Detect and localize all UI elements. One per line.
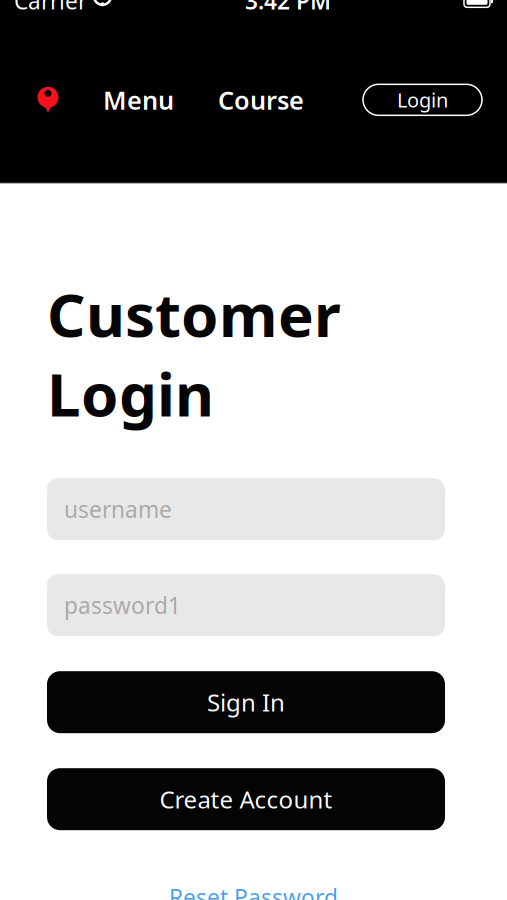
button[interactable]: Login [363,84,482,115]
staticText: Reset Password [169,882,338,900]
staticText: Sign In [207,686,285,718]
staticText: password1 [64,590,181,620]
button[interactable]: Course [208,79,314,121]
button[interactable]: username [47,478,445,540]
staticText: username [64,494,172,524]
staticText: Menu [103,83,174,117]
staticText: Course [218,83,304,117]
button[interactable]: Reset Password [47,882,460,900]
staticText: 3:42 PM [245,0,331,16]
staticText: Carrier [14,0,87,16]
button[interactable]: Sign In [47,671,445,733]
button[interactable]: Create Account [47,768,445,830]
staticText: Customer Login [47,274,341,433]
staticText: Login [397,86,448,113]
button[interactable]: Location [28,79,68,121]
button[interactable]: Menu [93,79,184,121]
staticText: Create Account [159,783,332,815]
button[interactable]: password1 [47,574,445,636]
